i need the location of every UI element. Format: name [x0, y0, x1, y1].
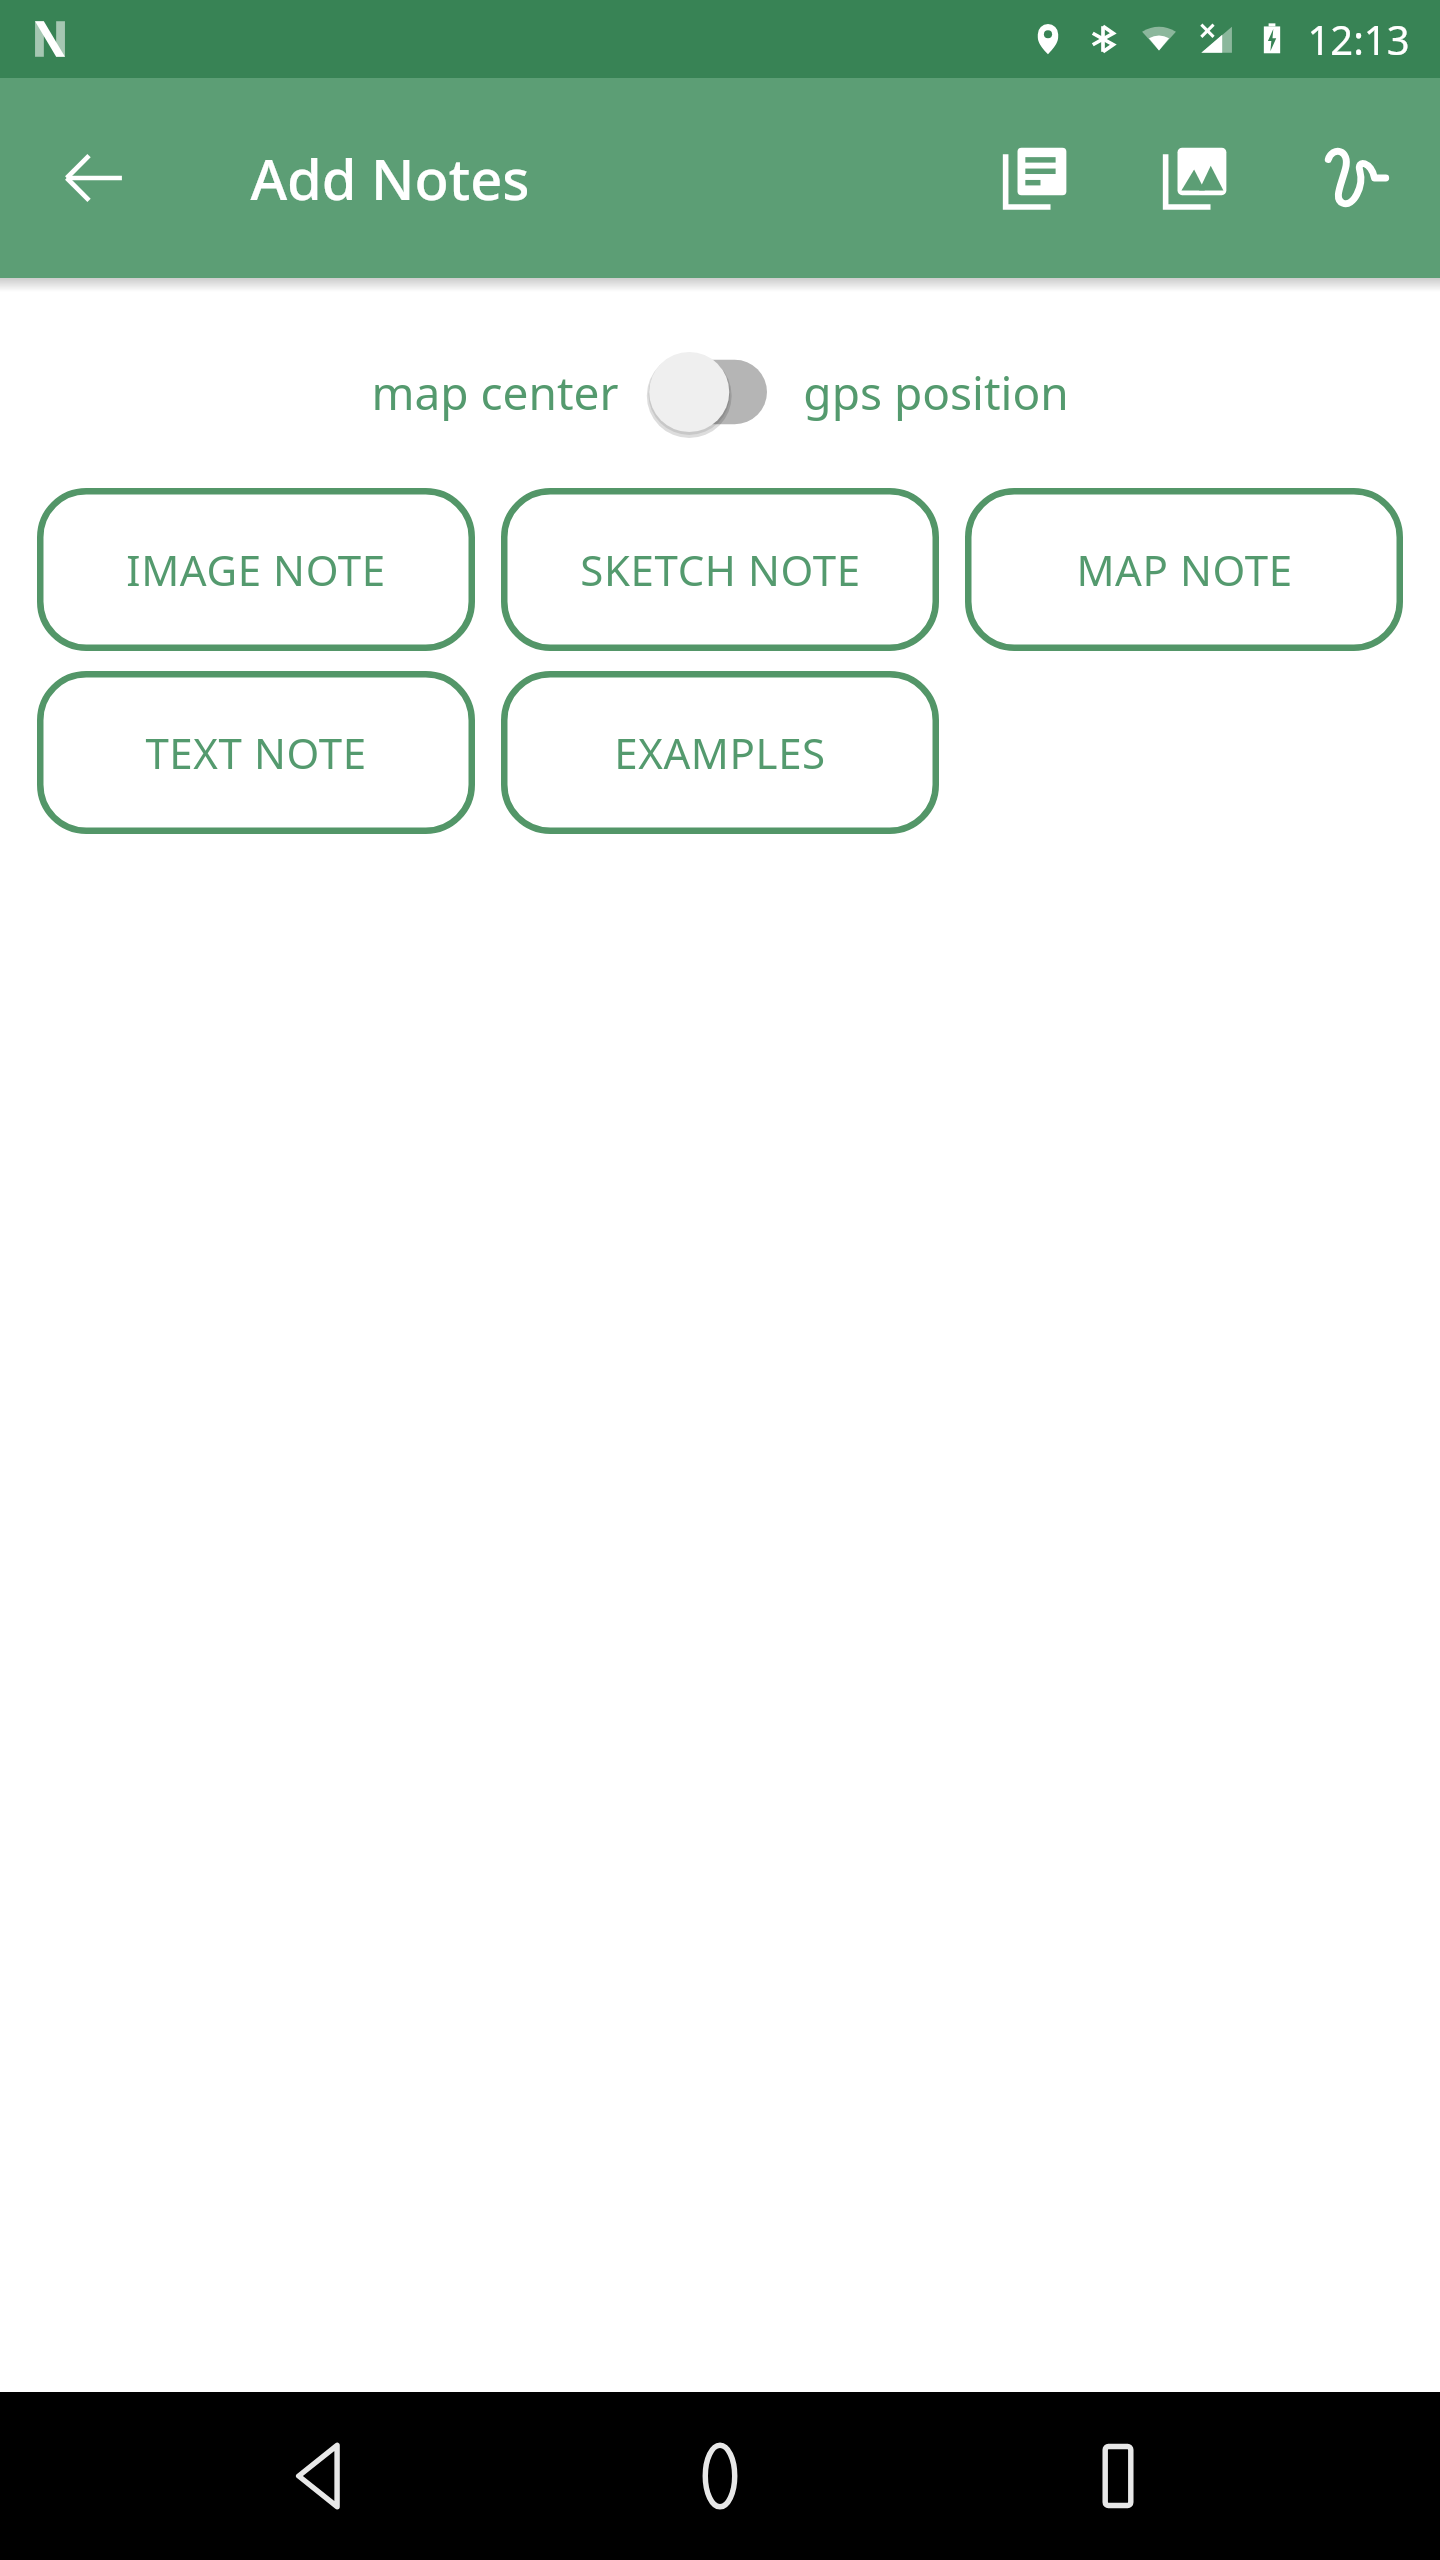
staticText: EXAMPLES [614, 724, 826, 781]
staticText: SKETCH NOTE [580, 541, 861, 598]
button[interactable]: Photo library [1142, 124, 1250, 232]
staticText: TEXT NOTE [145, 724, 367, 781]
button[interactable]: Back [38, 122, 150, 234]
button[interactable]: TEXT NOTE [37, 671, 475, 834]
staticText: Add Notes [250, 140, 530, 216]
staticText: IMAGE NOTE [126, 541, 386, 598]
button[interactable]: Toggle map center / gps position [641, 340, 781, 444]
staticText: gps position [803, 361, 1069, 424]
staticText: map center [371, 361, 619, 424]
button[interactable]: MAP NOTE [965, 488, 1403, 651]
button[interactable]: Sketch [1302, 124, 1410, 232]
button[interactable]: SKETCH NOTE [501, 488, 939, 651]
staticText: 12:13 [1307, 12, 1410, 66]
button[interactable]: EXAMPLES [501, 671, 939, 834]
button[interactable]: Recent apps [1043, 2401, 1193, 2551]
button[interactable]: Notes list [982, 124, 1090, 232]
button[interactable]: IMAGE NOTE [37, 488, 475, 651]
button[interactable]: Home [645, 2401, 795, 2551]
staticText: MAP NOTE [1076, 541, 1293, 598]
button[interactable]: Back [248, 2401, 398, 2551]
